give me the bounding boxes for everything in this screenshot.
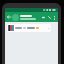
button[interactable]: Back (6, 14, 12, 20)
button[interactable]: More options (52, 15, 57, 20)
button[interactable] (7, 24, 51, 32)
button[interactable] (12, 14, 19, 21)
button[interactable]: Video call (40, 14, 46, 20)
button[interactable]: Call (46, 14, 52, 20)
button[interactable] (20, 15, 40, 20)
